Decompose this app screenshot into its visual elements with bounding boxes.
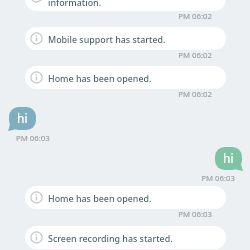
staticText: PM 06:02 xyxy=(152,11,212,22)
staticText: Home has been opened. xyxy=(48,192,152,204)
button[interactable]: hi xyxy=(9,107,36,130)
staticText: Screen recording has started. xyxy=(48,232,173,244)
button[interactable]: Mobile support has started. xyxy=(25,27,226,50)
staticText: Mobile support has started. xyxy=(48,33,166,45)
staticText: PM 06:02 xyxy=(152,50,212,61)
button[interactable]: Tap here for more information. xyxy=(25,0,226,11)
staticText: PM 06:03 xyxy=(175,173,235,184)
staticText: hi xyxy=(223,150,234,166)
staticText: PM 06:03 xyxy=(152,209,212,220)
staticText: Tap here for more information. xyxy=(48,0,125,8)
staticText: PM 06:03 xyxy=(16,133,76,144)
staticText: Home has been opened. xyxy=(48,72,152,84)
button[interactable]: Home has been opened. xyxy=(25,66,226,89)
button[interactable]: hi xyxy=(215,147,242,170)
button[interactable]: Home has been opened. xyxy=(25,186,226,209)
staticText: PM 06:02 xyxy=(152,89,212,100)
button[interactable]: Screen recording has started. xyxy=(25,226,226,249)
staticText: hi xyxy=(17,110,28,126)
